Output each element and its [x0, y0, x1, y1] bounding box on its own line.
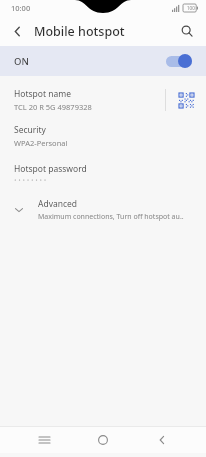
- staticText: Advanced: [38, 198, 78, 210]
- staticText: Hotspot password: [14, 163, 87, 175]
- button[interactable]: Share via QR code: [166, 82, 206, 118]
- button[interactable]: Home: [88, 427, 118, 453]
- staticText: WPA2-Personal: [14, 138, 68, 148]
- button[interactable]: Back: [147, 427, 177, 453]
- button[interactable]: Hotspot name: [0, 82, 206, 118]
- button[interactable]: Recents: [29, 427, 59, 453]
- button[interactable]: Back: [4, 18, 30, 44]
- staticText: TCL 20 R 5G 49879328: [14, 102, 92, 112]
- staticText: Hotspot name: [14, 88, 71, 100]
- staticText: Maximum connections, Turn off hotspot au…: [38, 212, 184, 222]
- staticText: 10:00: [11, 3, 31, 13]
- staticText: Mobile hotspot: [34, 23, 125, 40]
- staticText: ON: [14, 55, 29, 68]
- staticText: Security: [14, 124, 46, 136]
- button[interactable]: Security: [0, 118, 206, 154]
- button[interactable]: Advanced: [0, 190, 206, 230]
- staticText: 100: [187, 5, 195, 11]
- button[interactable]: ON: [0, 46, 206, 76]
- button[interactable]: Hotspot password: [0, 154, 206, 190]
- button[interactable]: Search: [174, 18, 200, 44]
